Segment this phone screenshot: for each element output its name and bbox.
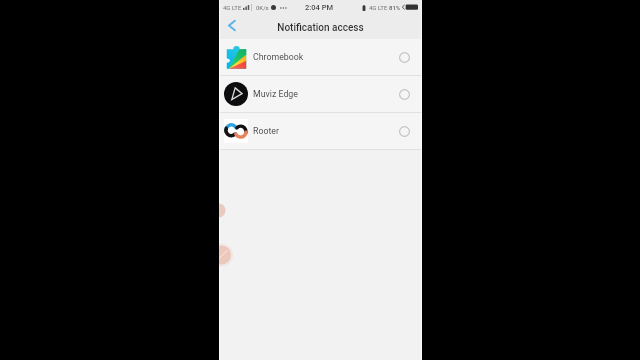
button[interactable]: Toggle notification access for Chromeboo… (395, 48, 413, 66)
staticText: Muviz Edge (253, 89, 298, 99)
staticText: Chromebook (253, 52, 304, 62)
staticText: 4G LTE (369, 4, 388, 11)
staticText: 0K/s (256, 4, 269, 11)
staticText: 4G LTE (223, 4, 242, 11)
button[interactable]: Muviz Edge (219, 76, 422, 112)
button[interactable]: Rooter (219, 113, 422, 149)
staticText: 2:04 PM (305, 3, 334, 12)
button[interactable]: Chromebook (219, 39, 422, 75)
button[interactable]: Toggle notification access for Rooter (395, 122, 413, 140)
staticText: Rooter (253, 126, 279, 136)
button[interactable]: Toggle notification access for Muviz Edg… (395, 85, 413, 103)
staticText: 81% (389, 4, 401, 11)
staticText: Notification access (277, 22, 364, 34)
button[interactable]: Back (219, 14, 244, 39)
